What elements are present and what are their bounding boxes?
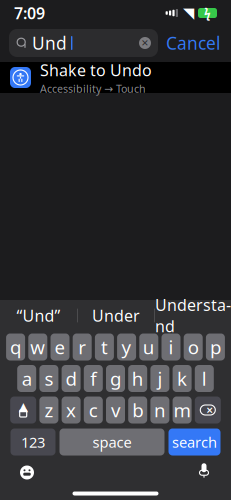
staticText: 123 — [21, 432, 45, 452]
button[interactable]: d — [62, 365, 81, 392]
button[interactable]: c — [84, 396, 103, 423]
button[interactable]: Cancel — [164, 29, 222, 57]
staticText: g — [110, 366, 121, 391]
staticText: t — [101, 335, 108, 359]
button[interactable]: e — [50, 333, 69, 360]
staticText: r — [78, 335, 86, 359]
staticText: h — [132, 366, 144, 391]
staticText: Shake to Undo — [40, 59, 152, 80]
button[interactable]: Emoji — [14, 461, 40, 483]
button[interactable]: p — [206, 333, 225, 360]
staticText: ϟ — [204, 5, 211, 21]
button[interactable]: s — [39, 365, 58, 392]
button[interactable]: “Und” — [0, 298, 77, 332]
button[interactable]: Delete — [195, 396, 221, 423]
staticText: x — [66, 398, 76, 422]
staticText: o — [188, 335, 199, 359]
button[interactable]: w — [28, 333, 47, 360]
staticText: f — [90, 366, 96, 391]
button[interactable]: Understand — [155, 298, 231, 332]
staticText: n — [154, 398, 166, 422]
button[interactable]: m — [173, 396, 192, 423]
staticText: s — [44, 366, 53, 391]
staticText: 7:09 — [14, 2, 45, 24]
staticText: m — [174, 398, 191, 422]
button[interactable]: n — [150, 396, 169, 423]
button[interactable]: Shake to Undo — [0, 62, 231, 93]
button[interactable]: Und — [9, 29, 158, 57]
staticText: Understand — [155, 294, 231, 337]
button[interactable]: Dictate — [191, 461, 217, 483]
button[interactable]: l — [195, 365, 214, 392]
staticText: j — [157, 366, 162, 391]
staticText: Und — [32, 31, 67, 54]
staticText: k — [177, 366, 187, 391]
button[interactable]: i — [161, 333, 180, 360]
button[interactable]: a — [17, 365, 36, 392]
button[interactable]: u — [139, 333, 158, 360]
button[interactable]: z — [39, 396, 58, 423]
button[interactable]: h — [128, 365, 147, 392]
button[interactable]: v — [106, 396, 125, 423]
staticText: w — [30, 335, 45, 359]
button[interactable]: space — [59, 428, 164, 455]
staticText: Accessibility → Touch — [40, 81, 146, 96]
button[interactable]: k — [173, 365, 192, 392]
staticText: v — [111, 398, 120, 422]
staticText: c — [89, 398, 98, 422]
staticText: search — [172, 432, 217, 452]
button[interactable]: f — [84, 365, 103, 392]
staticText: l — [202, 366, 207, 391]
staticText: Cancel — [166, 31, 220, 54]
staticText: e — [54, 335, 65, 359]
button[interactable]: y — [117, 333, 136, 360]
button[interactable]: q — [6, 333, 25, 360]
staticText: “Und” — [16, 305, 60, 326]
button[interactable]: r — [73, 333, 92, 360]
staticText: d — [66, 366, 77, 391]
staticText: i — [168, 335, 173, 359]
button[interactable]: Under — [78, 298, 154, 332]
button[interactable]: o — [184, 333, 203, 360]
button[interactable]: 123 — [10, 428, 55, 455]
staticText: ✕ — [141, 38, 149, 48]
staticText: z — [44, 398, 53, 422]
staticText: ▲ — [19, 400, 28, 413]
button[interactable]: Shift — [10, 396, 36, 423]
button[interactable]: g — [106, 365, 125, 392]
button[interactable]: b — [128, 396, 147, 423]
button[interactable]: j — [150, 365, 169, 392]
staticText: ◥ — [183, 5, 194, 21]
staticText: Under — [92, 305, 140, 326]
staticText: p — [210, 335, 221, 359]
button[interactable]: t — [95, 333, 114, 360]
staticText: y — [122, 335, 132, 359]
button[interactable]: x — [62, 396, 81, 423]
staticText: × — [206, 402, 213, 418]
staticText: q — [10, 335, 21, 359]
staticText: space — [92, 432, 131, 452]
button[interactable]: search — [168, 428, 220, 455]
staticText: u — [143, 335, 155, 359]
staticText: b — [132, 398, 143, 422]
staticText: a — [22, 366, 32, 391]
